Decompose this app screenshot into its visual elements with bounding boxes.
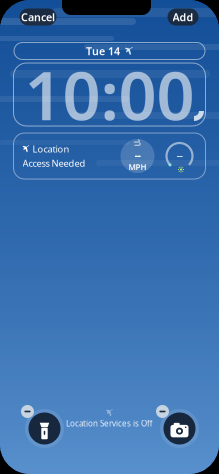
button[interactable]: Location bbox=[22, 134, 88, 178]
staticText: -- bbox=[176, 148, 182, 162]
button[interactable]: 10:00 bbox=[13, 63, 205, 126]
staticText: -- bbox=[134, 148, 140, 162]
staticText: Cancel bbox=[21, 10, 55, 24]
staticText: Access Needed bbox=[22, 157, 85, 169]
staticText: MPH bbox=[128, 162, 146, 172]
button[interactable]: -- bbox=[162, 139, 196, 173]
staticText: 10:00 bbox=[24, 50, 194, 139]
button[interactable]: Tue 14 bbox=[14, 42, 205, 59]
button[interactable]: Add bbox=[167, 8, 198, 25]
staticText: Add bbox=[172, 10, 193, 24]
staticText: Location Services is Off bbox=[66, 418, 153, 429]
button[interactable]: -- bbox=[120, 139, 154, 173]
staticText: Tue 14 bbox=[86, 44, 120, 58]
button[interactable]: Cancel bbox=[19, 8, 56, 25]
staticText: Location bbox=[32, 143, 69, 155]
